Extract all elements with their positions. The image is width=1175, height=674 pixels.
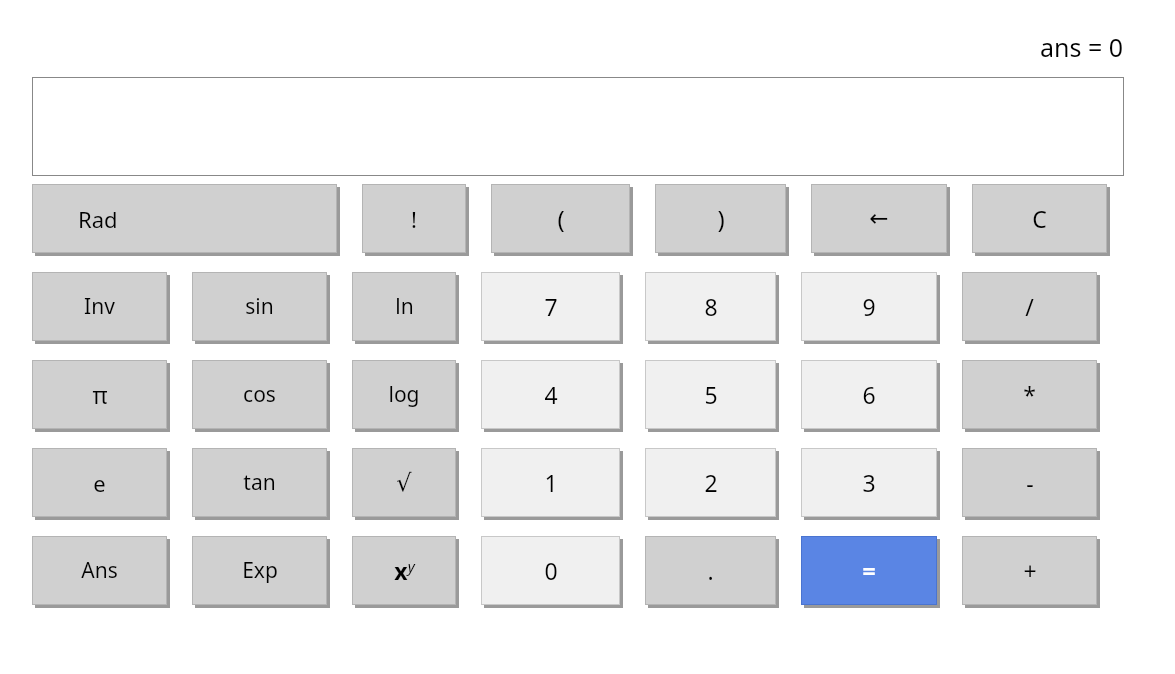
button[interactable]: xy [352,536,459,608]
button[interactable]: 1 [481,448,623,520]
staticText: Inv [84,292,115,321]
button[interactable]: 6 [801,360,940,432]
staticText: cos [243,380,276,409]
button[interactable]: π [32,360,170,432]
button[interactable]: e [32,448,170,520]
staticText: xy [394,555,415,586]
staticText: = [862,555,876,586]
staticText: C [1032,203,1047,234]
button[interactable]: = [801,536,940,608]
staticText: ln [395,292,414,321]
staticText: sin [245,292,274,321]
button[interactable]: * [962,360,1100,432]
staticText: ( [557,202,565,235]
staticText: Rad [78,204,118,234]
staticText: ) [717,202,725,235]
staticText: 6 [862,379,876,410]
button[interactable]: Inv [32,272,170,344]
button[interactable]: √ [352,448,459,520]
button[interactable]: 0 [481,536,623,608]
button[interactable]: / [962,272,1100,344]
button[interactable]: Clear [972,184,1110,256]
staticText: √ [396,469,412,497]
staticText: 5 [704,379,718,410]
button[interactable]: ln [352,272,459,344]
button[interactable]: ) [655,184,789,256]
button[interactable]: cos [192,360,330,432]
button[interactable]: 8 [645,272,779,344]
button[interactable]: ! [362,184,469,256]
button[interactable] [32,77,1124,176]
button[interactable]: Rad [32,184,340,256]
button[interactable]: 9 [801,272,940,344]
staticText: - [1026,467,1034,498]
staticText: 8 [704,291,718,322]
button[interactable]: Ans [32,536,170,608]
button[interactable]: Exp [192,536,330,608]
button[interactable]: - [962,448,1100,520]
button[interactable]: ( [491,184,633,256]
staticText: 9 [862,291,876,322]
staticText: ← [869,205,889,232]
button[interactable]: sin [192,272,330,344]
staticText: 4 [544,379,558,410]
staticText: tan [243,468,276,497]
staticText: / [1025,291,1034,322]
staticText: π [92,379,108,410]
button[interactable]: 2 [645,448,779,520]
staticText: 0 [544,555,558,586]
button[interactable]: . [645,536,779,608]
staticText: Ans [81,556,118,585]
staticText: ! [411,204,417,234]
staticText: log [388,380,420,409]
staticText: Exp [242,556,278,585]
staticText: 3 [862,467,876,498]
button[interactable]: 4 [481,360,623,432]
staticText: 2 [704,467,718,498]
button[interactable]: + [962,536,1100,608]
staticText: e [93,468,106,498]
button[interactable]: log [352,360,459,432]
staticText: 1 [544,467,558,498]
button[interactable]: 3 [801,448,940,520]
staticText: * [1023,379,1036,410]
staticText: 7 [544,291,558,322]
button[interactable]: tan [192,448,330,520]
button[interactable]: 5 [645,360,779,432]
staticText: . [707,555,714,586]
staticText: + [1023,555,1037,586]
button[interactable]: 7 [481,272,623,344]
button[interactable]: Backspace [811,184,950,256]
staticText: ans = 0 [1040,30,1124,64]
